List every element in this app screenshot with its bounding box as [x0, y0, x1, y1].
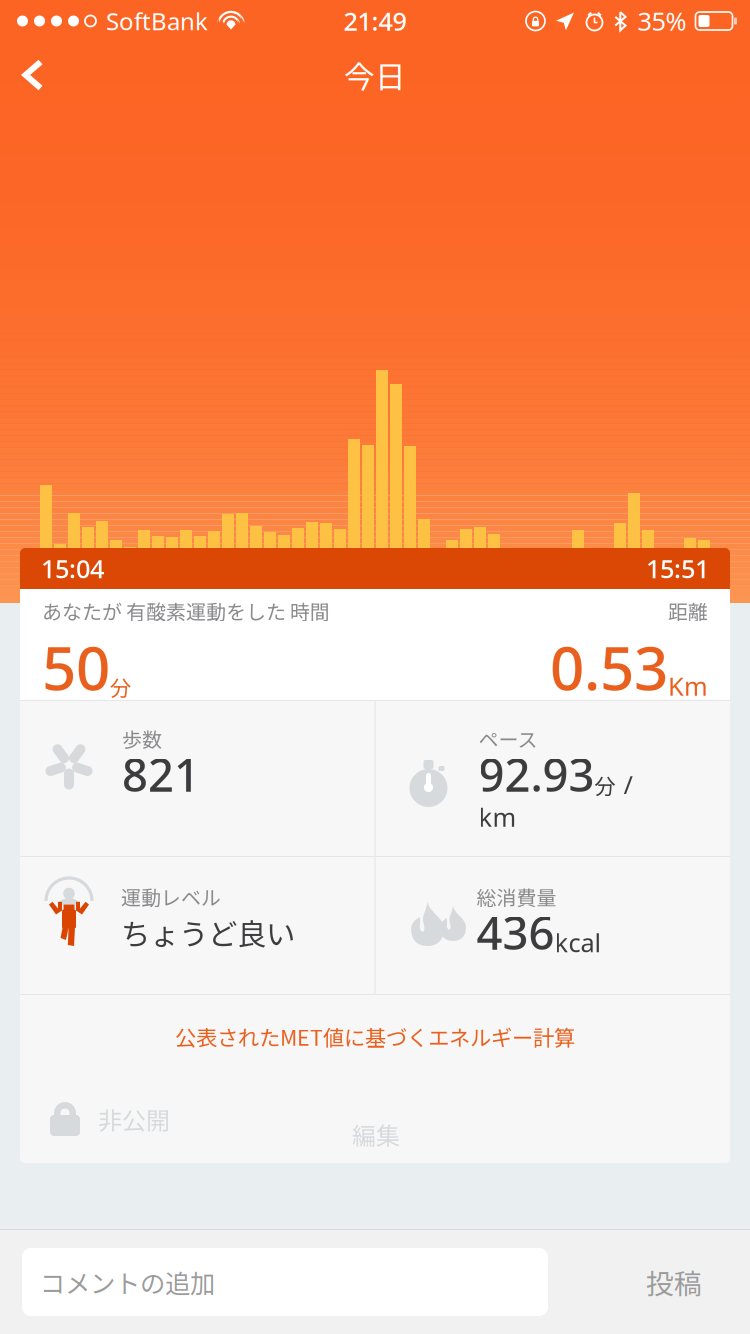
- staticText: 821: [122, 744, 200, 804]
- staticText: 分: [110, 671, 131, 702]
- button[interactable]: 投稿: [620, 1246, 728, 1318]
- staticText: 公表されたMET値に基づくエネルギー計算: [175, 1021, 575, 1052]
- staticText: /: [623, 768, 632, 801]
- staticText: Km: [668, 669, 708, 703]
- button[interactable]: コメントの追加: [22, 1248, 548, 1316]
- staticText: 35%: [637, 4, 686, 38]
- button[interactable]: Back: [0, 43, 66, 107]
- staticText: 92.93: [478, 744, 594, 804]
- staticText: 総消費量: [476, 882, 556, 911]
- staticText: コメントの追加: [40, 1264, 215, 1300]
- staticText: 15:04: [41, 552, 104, 585]
- staticText: kcal: [554, 926, 601, 959]
- staticText: 15:51: [646, 552, 709, 585]
- staticText: 非公開: [98, 1102, 170, 1136]
- staticText: ペース: [478, 724, 537, 753]
- staticText: 50: [42, 627, 110, 707]
- staticText: SoftBank: [106, 5, 208, 37]
- staticText: 運動レベル: [121, 882, 221, 911]
- staticText: 21:49: [343, 4, 406, 38]
- button[interactable]: 非公開: [43, 1095, 176, 1143]
- staticText: 0.53: [550, 627, 668, 707]
- staticText: 編集: [352, 1117, 400, 1152]
- staticText: あなたが 有酸素運動をした 時間: [42, 596, 330, 625]
- staticText: 投稿: [646, 1262, 702, 1302]
- staticText: 今日: [344, 53, 406, 97]
- staticText: km: [478, 800, 516, 834]
- staticText: 分: [594, 769, 615, 800]
- staticText: 歩数: [122, 724, 162, 753]
- staticText: 436: [476, 902, 554, 962]
- staticText: 距離: [668, 596, 708, 625]
- staticText: ちょうど良い: [121, 911, 295, 953]
- button[interactable]: 編集: [338, 1107, 414, 1162]
